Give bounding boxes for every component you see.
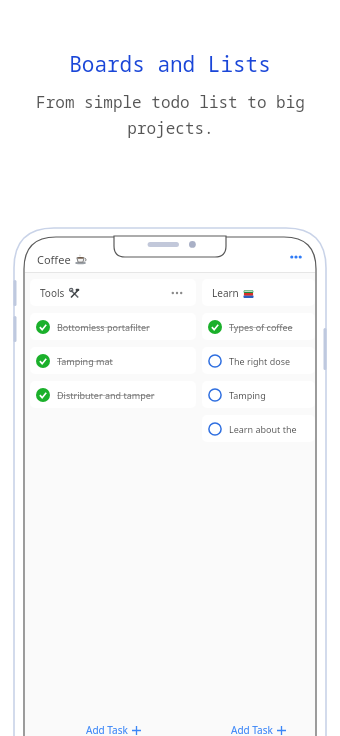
- button[interactable]: Board menu: [285, 246, 307, 268]
- button[interactable]: Learn: [202, 279, 315, 306]
- button[interactable]: The right dose: [202, 347, 315, 374]
- staticText: Add Task: [231, 723, 273, 736]
- staticText: Bottomless portafilter: [57, 321, 150, 333]
- button[interactable]: Tools: [30, 279, 196, 306]
- button[interactable]: List menu: [168, 284, 186, 302]
- staticText: Tamping mat: [57, 355, 113, 367]
- staticText: Boards and Lists: [69, 50, 271, 79]
- button[interactable]: Tamping mat: [30, 347, 196, 374]
- staticText: Distributer and tamper: [57, 389, 155, 401]
- button[interactable]: Bottomless portafilter: [30, 313, 196, 340]
- staticText: Coffee: [37, 252, 71, 267]
- staticText: Learn: [212, 286, 239, 300]
- button[interactable]: Types of coffee: [202, 313, 315, 340]
- staticText: Tamping: [229, 389, 266, 401]
- button[interactable]: Distributer and tamper: [30, 381, 196, 408]
- staticText: Add Task: [86, 723, 128, 736]
- staticText: The right dose: [229, 355, 291, 367]
- button[interactable]: Learn about the: [202, 415, 315, 442]
- button[interactable]: Coffee: [37, 252, 86, 267]
- staticText: Tools: [40, 286, 65, 300]
- button[interactable]: Add Task: [30, 715, 196, 736]
- staticText: From simple todo list to big projects.: [36, 91, 305, 139]
- button[interactable]: Add Task: [202, 715, 315, 736]
- staticText: Types of coffee: [229, 321, 293, 333]
- staticText: Learn about the: [229, 423, 297, 435]
- button[interactable]: Tamping: [202, 381, 315, 408]
